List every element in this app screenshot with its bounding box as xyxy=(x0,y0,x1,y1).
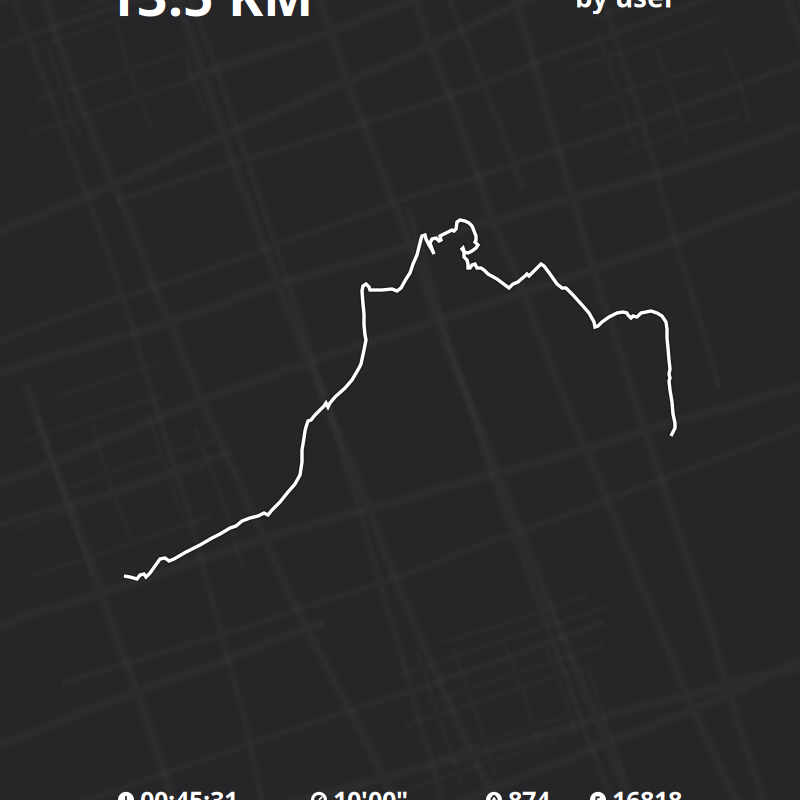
staticText: by user xyxy=(575,0,677,15)
staticText: 874 xyxy=(508,783,550,800)
staticText: 13.5 KM xyxy=(106,0,313,31)
staticText: 16818 xyxy=(612,783,682,800)
staticText: 10'00" xyxy=(333,783,408,800)
staticText: 00:45:31 xyxy=(140,783,238,800)
